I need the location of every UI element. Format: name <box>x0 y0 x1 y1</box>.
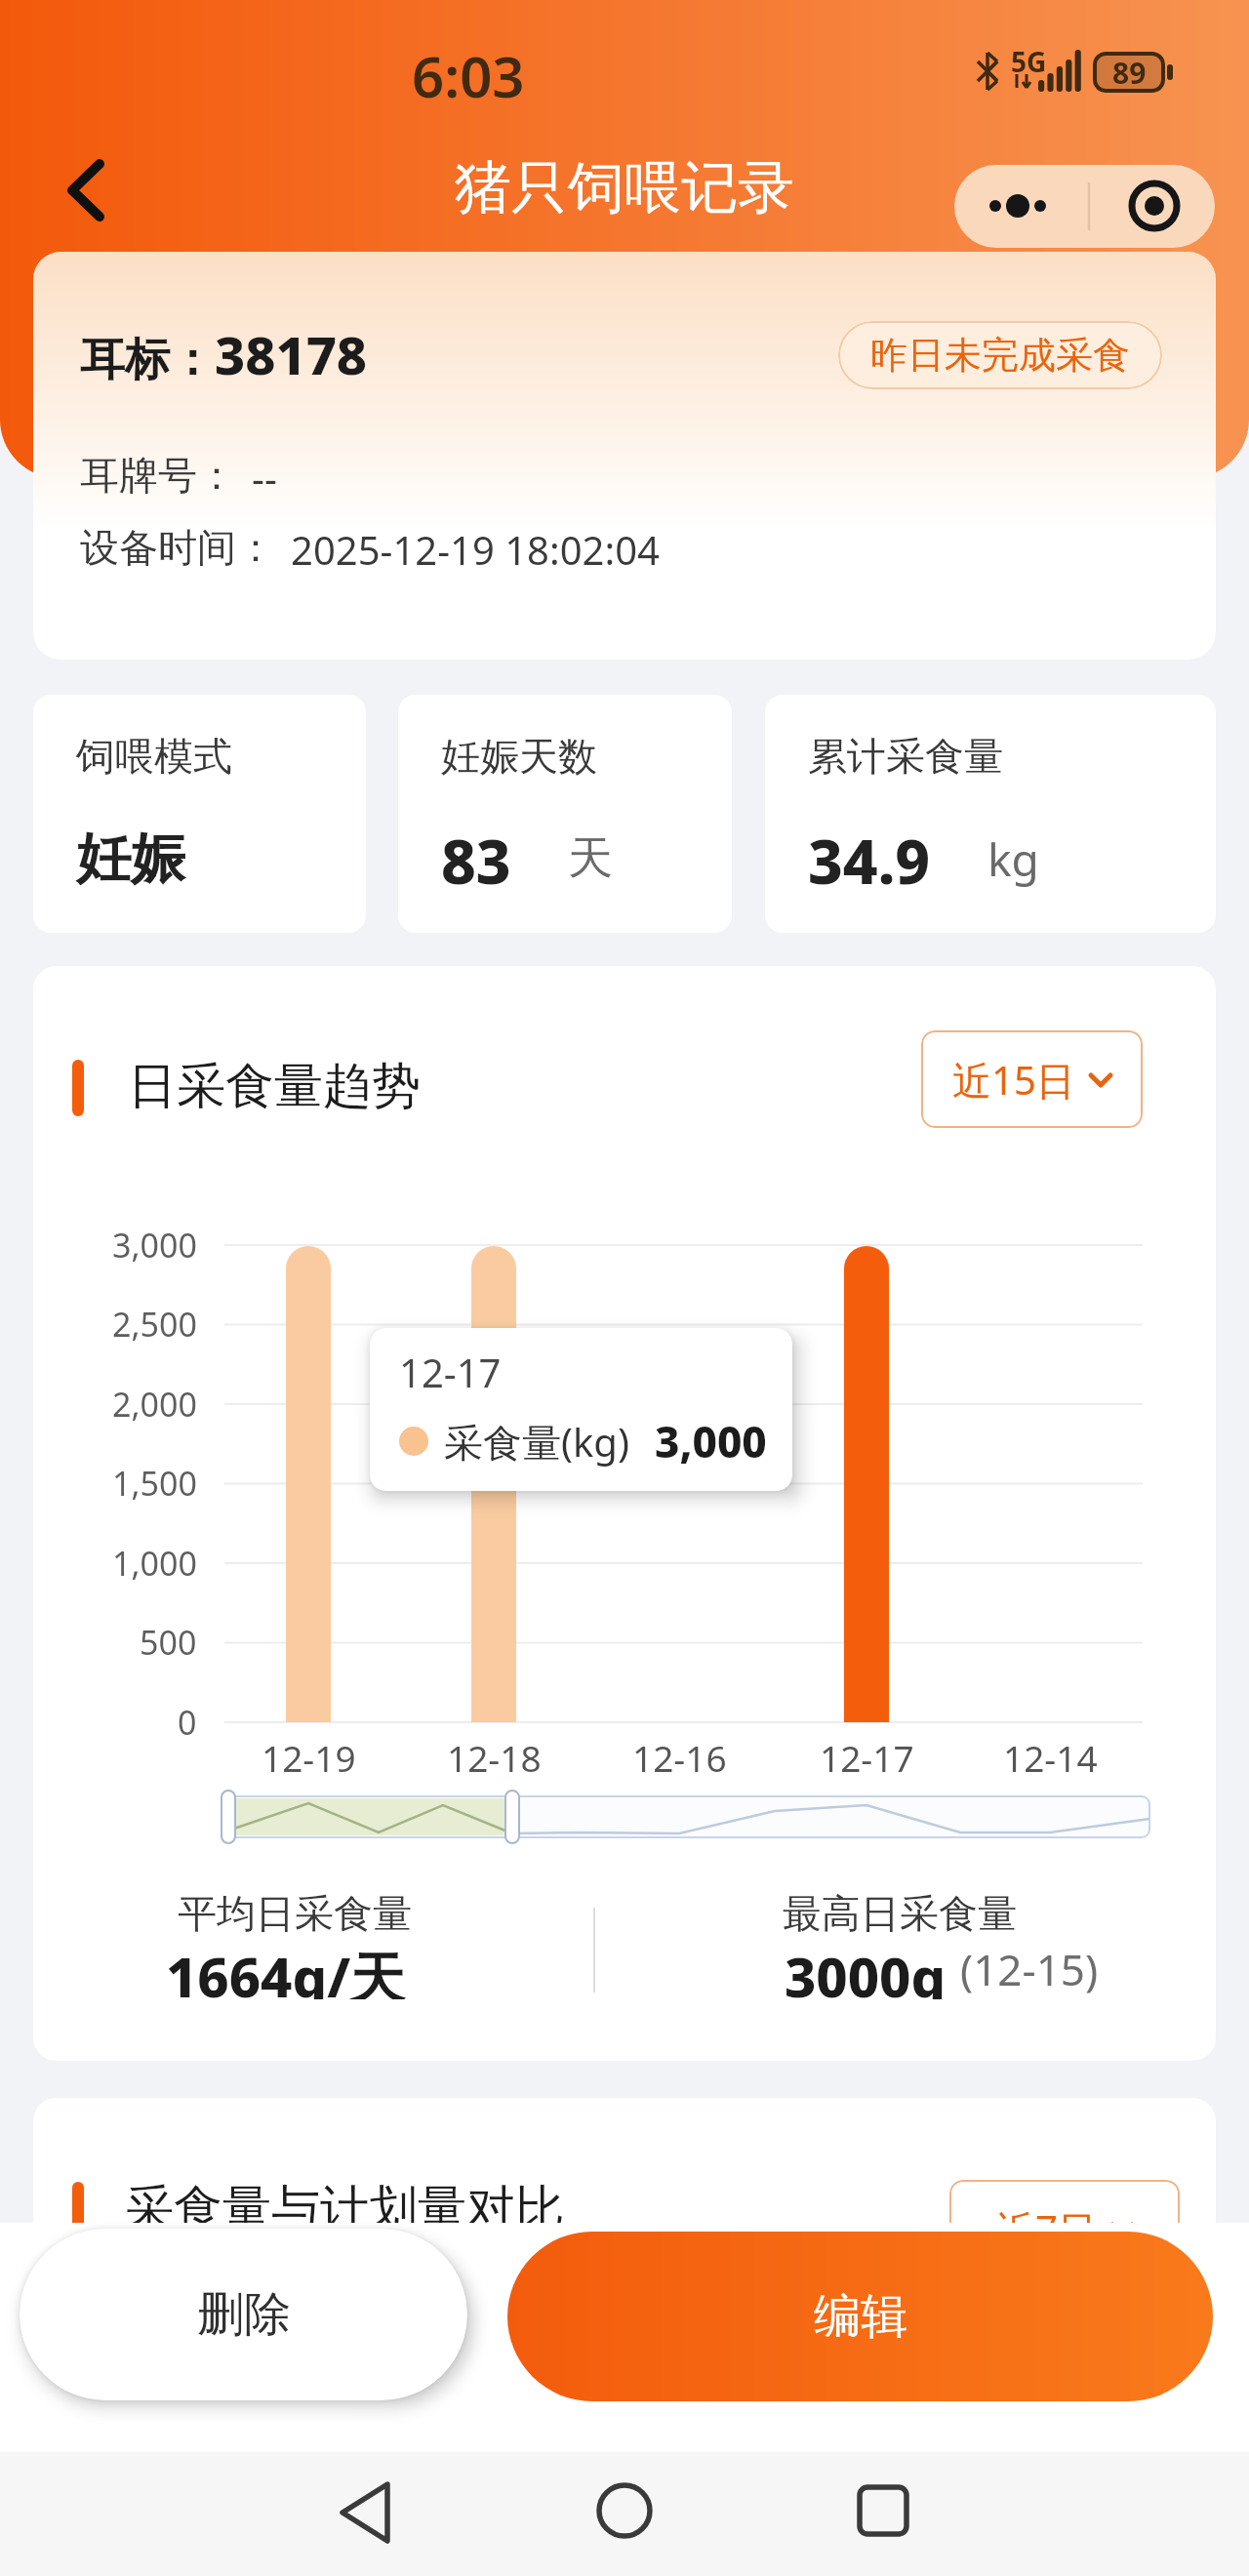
staticText: 2,500 <box>112 1302 197 1347</box>
button[interactable] <box>839 2474 927 2552</box>
staticText: 3,000 <box>655 1412 767 1470</box>
button[interactable]: 近7日 <box>949 2180 1180 2277</box>
staticText: 0 <box>178 1700 197 1745</box>
staticText: 3000g <box>785 1939 947 1999</box>
staticText: 饲喂模式 <box>76 732 232 781</box>
staticText: 设备时间： <box>80 523 275 566</box>
staticText: 1,500 <box>112 1461 197 1506</box>
staticText: 34.9 <box>808 820 931 898</box>
staticText: 耳标： <box>80 332 215 388</box>
staticText: 平均日采食量 <box>178 1889 412 1938</box>
staticText: 500 <box>140 1620 197 1665</box>
staticText: 12-17 <box>399 1346 502 1398</box>
staticText: 耳牌号： <box>80 451 236 494</box>
staticText: 1,000 <box>112 1541 197 1586</box>
staticText: 天 <box>568 830 613 887</box>
staticText: 最高日采食量 <box>783 1889 1017 1938</box>
staticText: 删除 <box>197 2285 291 2344</box>
button[interactable]: 昨日未完成采食 <box>838 321 1162 389</box>
staticText: 妊娠天数 <box>441 732 597 781</box>
staticText: 3,000 <box>112 1223 197 1268</box>
staticText: kg <box>987 828 1039 890</box>
staticText: 12-18 <box>447 1733 542 1780</box>
button[interactable] <box>581 2474 668 2552</box>
button[interactable] <box>322 2474 410 2552</box>
staticText: 采食量(kg) <box>444 1415 629 1469</box>
staticText: 2025-12-19 18:02:04 <box>291 523 660 566</box>
staticText: 编辑 <box>814 2287 907 2346</box>
staticText: -- <box>252 451 277 494</box>
staticText: 12-19 <box>262 1733 356 1780</box>
button[interactable] <box>954 165 1084 248</box>
staticText: 2,000 <box>112 1382 197 1427</box>
button[interactable]: 饲喂模式 <box>33 695 366 933</box>
staticText: 83 <box>441 820 511 898</box>
staticText: 12-14 <box>1003 1733 1098 1780</box>
staticText: 近15日 <box>952 1053 1075 1107</box>
staticText: 6:03 <box>412 37 525 100</box>
staticText: 猪只饲喂记录 <box>455 152 794 222</box>
button[interactable]: 编辑 <box>507 2232 1213 2401</box>
staticText: 采食量与计划量对比 <box>125 2178 564 2238</box>
staticText: 近7日 <box>996 2202 1097 2256</box>
staticText: 累计采食量 <box>808 732 1003 781</box>
button[interactable] <box>1084 165 1215 248</box>
staticText: 12-17 <box>820 1733 914 1780</box>
staticText: 38178 <box>215 318 368 390</box>
staticText: 1664g/天 <box>166 1939 406 1999</box>
staticText: 妊娠 <box>76 825 185 894</box>
staticText: 5G <box>1011 43 1047 76</box>
button[interactable]: 近15日 <box>921 1030 1143 1128</box>
staticText: 12-16 <box>632 1733 727 1780</box>
button[interactable]: 删除 <box>20 2229 467 2400</box>
staticText: 日采食量趋势 <box>128 1056 421 1116</box>
staticText: 昨日未完成采食 <box>870 332 1130 379</box>
button[interactable] <box>59 156 117 224</box>
button[interactable]: 累计采食量 <box>765 695 1216 933</box>
button[interactable]: 妊娠天数 <box>398 695 732 933</box>
staticText: 89 <box>1112 53 1147 93</box>
staticText: (12-15) <box>960 1940 1099 1998</box>
